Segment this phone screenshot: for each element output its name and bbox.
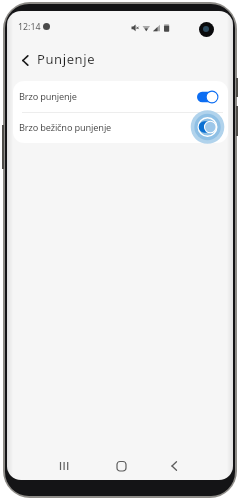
button[interactable] bbox=[21, 55, 30, 66]
button[interactable] bbox=[191, 86, 223, 108]
staticText: Brzo bežično punjenje bbox=[19, 121, 112, 134]
staticText: 12:14 bbox=[18, 21, 41, 33]
staticText: Brzo punjenje bbox=[19, 90, 77, 103]
button[interactable]: Brzo bežično punjenje bbox=[13, 113, 228, 143]
button[interactable] bbox=[187, 107, 228, 147]
staticText: Punjenje bbox=[37, 50, 96, 68]
button[interactable]: Brzo punjenje bbox=[13, 81, 228, 112]
